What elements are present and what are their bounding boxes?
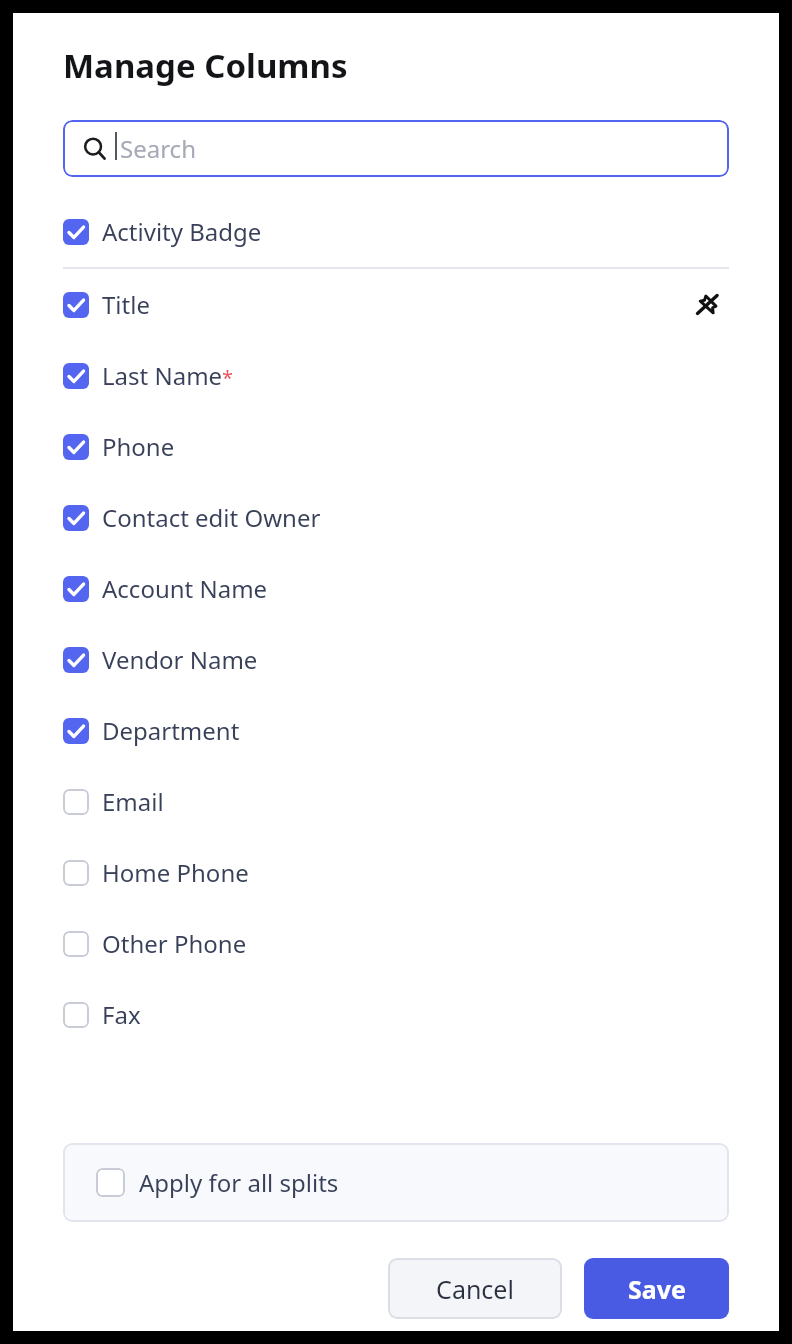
button[interactable]: Fax — [63, 979, 729, 1050]
staticText: Department — [102, 714, 240, 747]
staticText: Save — [628, 1272, 686, 1306]
button[interactable]: Department — [63, 695, 729, 766]
staticText: Fax — [102, 998, 141, 1031]
button[interactable]: Other Phone — [63, 908, 729, 979]
button[interactable]: Unpin column — [685, 283, 729, 327]
staticText: Title — [102, 288, 150, 321]
button[interactable]: Phone — [63, 411, 729, 482]
staticText: Vendor Name — [102, 643, 258, 676]
staticText: Search — [120, 132, 196, 165]
button[interactable]: Cancel — [388, 1258, 562, 1319]
button[interactable]: Save — [584, 1258, 729, 1319]
button[interactable]: Activity Badge — [63, 196, 729, 267]
staticText: Email — [102, 785, 164, 818]
button[interactable]: Title — [63, 269, 729, 340]
staticText: Phone — [102, 430, 175, 463]
button[interactable]: Home Phone — [63, 837, 729, 908]
button[interactable]: Apply for all splits — [63, 1143, 729, 1222]
button[interactable]: Email — [63, 766, 729, 837]
staticText: Last Name* — [102, 359, 234, 392]
staticText: Apply for all splits — [139, 1166, 339, 1199]
staticText: Account Name — [102, 572, 268, 605]
button[interactable]: Last Name* — [63, 340, 729, 411]
button[interactable]: Search — [63, 120, 729, 177]
staticText: Cancel — [436, 1272, 514, 1306]
button[interactable]: Vendor Name — [63, 624, 729, 695]
button[interactable]: Contact edit Owner — [63, 482, 729, 553]
staticText: Other Phone — [102, 927, 247, 960]
staticText: Manage Columns — [63, 43, 348, 88]
staticText: Home Phone — [102, 856, 249, 889]
button[interactable]: Account Name — [63, 553, 729, 624]
staticText: Contact edit Owner — [102, 501, 321, 534]
staticText: Activity Badge — [102, 215, 262, 248]
